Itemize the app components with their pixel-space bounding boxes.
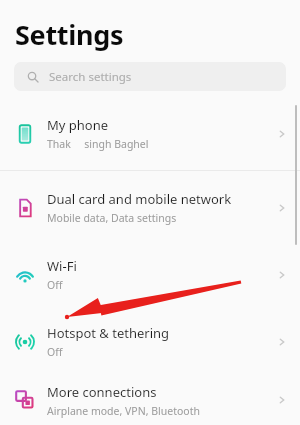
- staticText: Off: [47, 278, 63, 292]
- staticText: My phone: [47, 116, 109, 134]
- button[interactable]: Hotspot & tethering: [0, 308, 300, 375]
- staticText: More connections: [47, 383, 157, 401]
- button[interactable]: Wi-Fi: [0, 241, 300, 308]
- staticText: Hotspot & tethering: [47, 324, 170, 342]
- staticText: Airplane mode, VPN, Bluetooth: [47, 404, 200, 418]
- button[interactable]: Search settings: [14, 62, 286, 91]
- button[interactable]: More connections: [0, 375, 300, 425]
- button[interactable]: Dual card and mobile network: [0, 174, 300, 241]
- staticText: Wi-Fi: [47, 257, 77, 275]
- staticText: Off: [47, 345, 63, 359]
- staticText: Dual card and mobile network: [47, 190, 232, 208]
- staticText: Settings: [15, 16, 124, 53]
- staticText: Search settings: [49, 69, 132, 85]
- staticText: Thak singh Baghel: [47, 137, 149, 151]
- button[interactable]: My phone: [0, 100, 300, 167]
- staticText: Mobile data, Data settings: [47, 211, 177, 225]
